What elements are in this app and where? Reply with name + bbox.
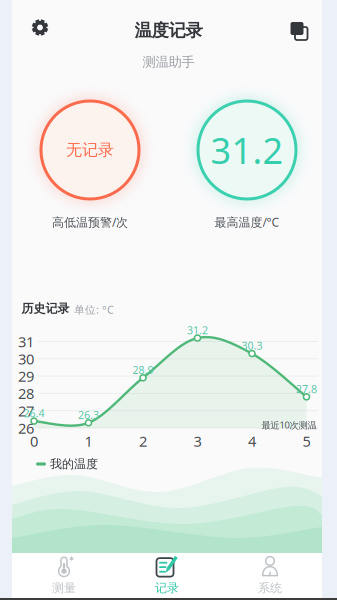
- staticText: 测温助手: [142, 54, 194, 70]
- button[interactable]: Copy records: [288, 19, 306, 38]
- staticText: 27.8: [296, 382, 317, 396]
- staticText: 1: [84, 431, 92, 451]
- staticText: 31: [18, 332, 34, 351]
- staticText: 高低温预警/次: [52, 214, 128, 230]
- staticText: 4: [248, 431, 256, 451]
- staticText: 29: [18, 366, 34, 386]
- staticText: 0: [30, 431, 38, 451]
- button[interactable]: 记录: [115, 553, 218, 598]
- staticText: 26: [18, 418, 34, 438]
- button[interactable]: 系统: [218, 553, 321, 598]
- staticText: 26.4: [23, 406, 44, 420]
- staticText: 27: [18, 401, 34, 420]
- staticText: 5: [302, 431, 310, 451]
- staticText: 历史记录: [21, 301, 69, 316]
- staticText: 2: [139, 431, 147, 451]
- staticText: 28.9: [132, 363, 153, 377]
- staticText: 我的温度: [50, 457, 98, 471]
- staticText: 31.2: [187, 323, 208, 337]
- staticText: 26.3: [78, 408, 99, 422]
- staticText: 最高温度/°C: [214, 214, 279, 230]
- staticText: 无记录: [66, 140, 114, 160]
- staticText: 单位: °C: [74, 302, 114, 317]
- staticText: 最近10次测温: [261, 419, 316, 431]
- button[interactable]: 测量: [12, 553, 115, 598]
- staticText: 测量: [52, 581, 76, 595]
- staticText: 记录: [155, 581, 179, 595]
- button[interactable]: Settings: [26, 13, 54, 41]
- staticText: 3: [193, 431, 201, 451]
- staticText: 温度记录: [134, 20, 202, 41]
- staticText: 31.2: [210, 126, 283, 174]
- staticText: 28: [18, 384, 34, 403]
- staticText: 30.3: [241, 338, 262, 353]
- staticText: 30: [18, 349, 34, 369]
- staticText: 系统: [258, 581, 282, 595]
